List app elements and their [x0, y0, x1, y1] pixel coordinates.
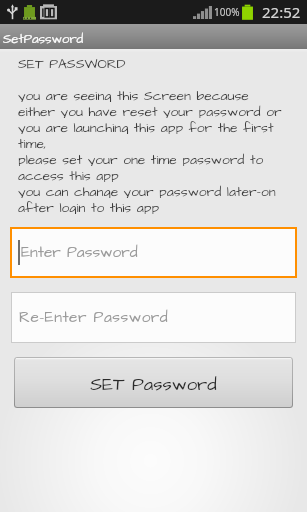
staticText: Enter Password [21, 242, 138, 263]
staticText: SET Password [90, 372, 217, 398]
staticText: SetPassword [3, 30, 84, 48]
staticText: please set your one time password to [18, 150, 264, 166]
button[interactable]: SET Password [14, 357, 293, 408]
staticText: after login to this app [18, 198, 160, 214]
button[interactable]: Enter Password [10, 227, 297, 278]
staticText: access this app [18, 166, 119, 182]
button[interactable]: Re–Enter Password [11, 292, 296, 343]
staticText: 100% [214, 5, 240, 19]
staticText: SET PASSWORD [18, 54, 126, 73]
staticText: time, [18, 134, 47, 150]
staticText: you are seeing this Screen because [18, 86, 249, 102]
staticText: you are launching this app for the first [18, 118, 274, 134]
staticText: Re–Enter Password [19, 307, 169, 328]
staticText: you can change your password later-on [18, 182, 276, 198]
staticText: 22:52 [262, 2, 301, 22]
staticText: either you have reset your password or [18, 102, 282, 118]
